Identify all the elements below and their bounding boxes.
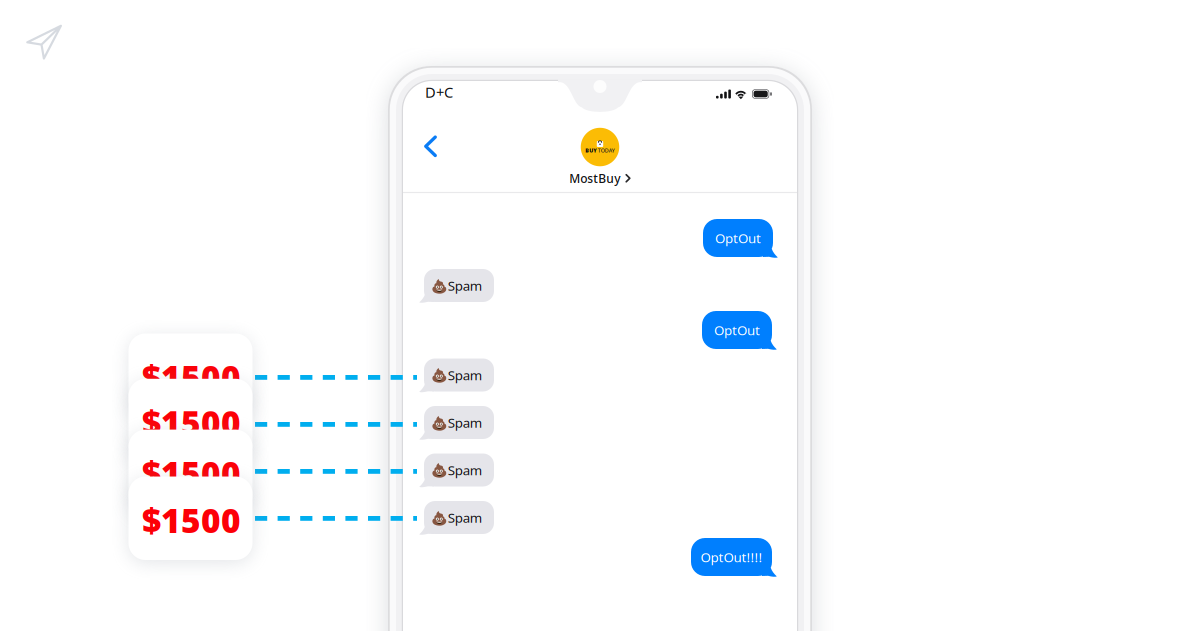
staticText: D+C [425,82,453,102]
staticText: 💩Spam [431,414,482,431]
staticText: 💩Spam [431,509,482,526]
button[interactable]: BUY [569,128,631,186]
staticText: BUY [585,147,597,154]
staticText: TODAY [598,147,615,154]
staticText: $1500 [142,451,241,495]
staticText: 💩Spam [431,366,482,384]
button[interactable]: Back [408,124,452,168]
staticText: OptOut [714,321,760,339]
staticText: OptOut!!!! [700,548,762,566]
staticText: $1500 [142,400,241,444]
staticText: OptOut [715,229,761,247]
staticText: $1500 [142,498,241,542]
staticText: MostBuy [569,170,620,186]
staticText: 💩Spam [431,461,482,479]
staticText: 💩Spam [431,277,482,294]
staticText: $1500 [142,355,241,399]
